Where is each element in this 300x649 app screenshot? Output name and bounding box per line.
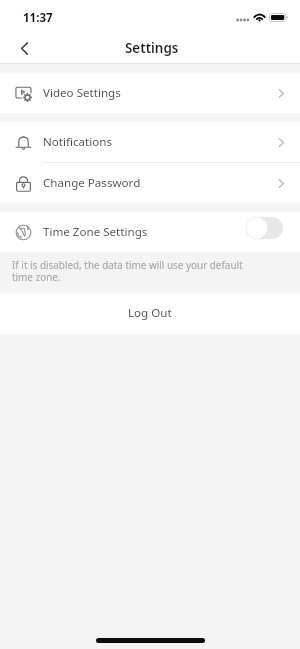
- staticText: Log Out: [128, 305, 172, 321]
- staticText: Time Zone Settings: [43, 224, 148, 240]
- button[interactable]: Notifications: [0, 122, 300, 162]
- staticText: 11:37: [23, 10, 53, 26]
- staticText: Video Settings: [43, 85, 121, 101]
- button[interactable]: Time zone toggle: [246, 217, 283, 239]
- staticText: If it is disabled, the data time will us…: [12, 258, 262, 284]
- button[interactable]: Log Out: [0, 293, 300, 334]
- staticText: Notifications: [43, 134, 112, 150]
- staticText: Settings: [125, 39, 179, 57]
- button[interactable]: Change Password: [0, 163, 300, 203]
- staticText: Change Password: [43, 175, 141, 191]
- button[interactable]: Back: [8, 32, 40, 64]
- button[interactable]: Time Zone Settings: [0, 212, 300, 252]
- button[interactable]: Video Settings: [0, 73, 300, 113]
